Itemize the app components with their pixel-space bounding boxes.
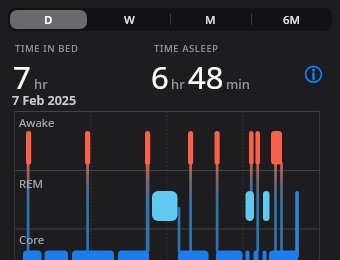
staticText: M — [205, 12, 216, 28]
staticText: REM — [19, 176, 43, 192]
staticText: hr — [171, 75, 185, 93]
staticText: W — [124, 12, 135, 28]
button[interactable] — [304, 65, 323, 84]
staticText: 6 — [151, 56, 169, 98]
staticText: min — [226, 75, 250, 93]
staticText: TIME IN BED — [15, 42, 79, 55]
staticText: 6M — [283, 12, 301, 28]
staticText: 48 — [188, 56, 224, 98]
staticText: Awake — [19, 115, 55, 131]
button[interactable]: D — [10, 10, 87, 29]
staticText: 7 — [13, 56, 31, 98]
button[interactable]: 6M — [251, 8, 332, 31]
button[interactable]: W — [89, 8, 170, 31]
staticText: 7 Feb 2025 — [12, 92, 77, 109]
staticText: TIME ASLEEP — [154, 42, 219, 55]
staticText: Core — [19, 232, 45, 248]
button[interactable]: M — [170, 8, 251, 31]
staticText: hr — [34, 75, 48, 93]
staticText: D — [44, 12, 53, 28]
